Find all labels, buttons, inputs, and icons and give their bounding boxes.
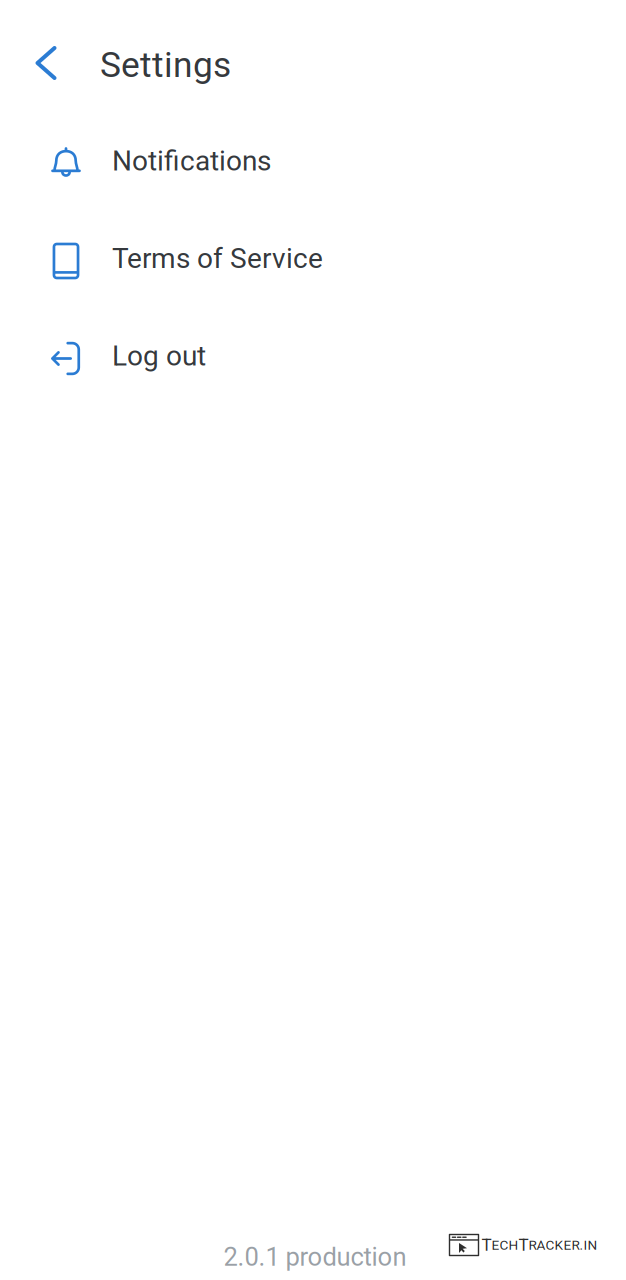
staticText: Notifications [112,145,271,177]
staticText: IN [583,1237,597,1253]
button[interactable]: Back [16,29,76,97]
staticText: T [481,1235,491,1255]
button[interactable]: Notifications [0,116,626,206]
staticText: ECH [491,1237,518,1253]
button[interactable]: Terms of Service [0,213,626,303]
staticText: RACKER [528,1237,579,1253]
staticText: Settings [100,44,231,86]
staticText: Terms of Service [112,242,323,275]
staticText: T [518,1235,528,1255]
staticText: 2.0.1 production [223,1242,406,1272]
button[interactable]: Log out [0,311,626,401]
staticText: Log out [112,340,206,372]
staticText: . [579,1237,583,1253]
